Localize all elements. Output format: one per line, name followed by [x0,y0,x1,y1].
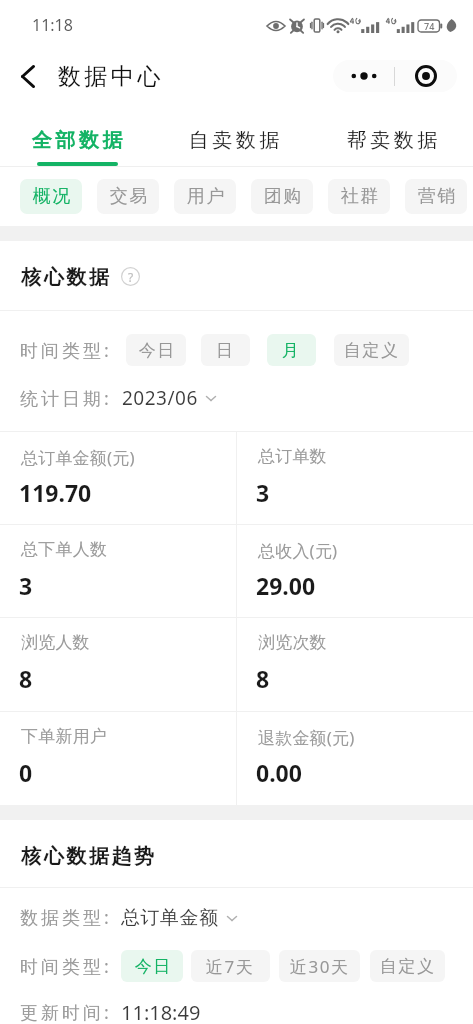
staticText: 退款金额(元) [258,726,355,749]
staticText: 119.70 [19,477,92,508]
staticText: 今日 [138,340,175,361]
button[interactable]: 近30天 [279,950,360,982]
staticText: 月 [282,340,301,361]
staticText: 时间类型: [20,338,112,363]
button[interactable]: 总订单金额 [121,906,238,930]
staticText: 0 [19,757,33,788]
button[interactable]: 团购 [251,179,313,214]
button[interactable]: 社群 [328,179,390,214]
staticText: 总下单人数 [21,539,107,560]
staticText: 11:18:49 [121,999,201,1024]
staticText: 概况 [32,185,71,208]
staticText: 浏览人数 [21,632,90,653]
staticText: 下单新用户 [21,726,107,747]
staticText: 核心数据趋势 [20,844,155,869]
button[interactable]: 月 [267,334,316,366]
staticText: 交易 [109,185,148,208]
staticText: 全部数据 [30,128,124,153]
staticText: 自定义 [380,956,436,977]
button[interactable]: 交易 [97,179,159,214]
button[interactable]: 全部数据 [0,102,157,167]
staticText: 总订单金额(元) [21,446,135,469]
staticText: 74 [424,20,435,32]
staticText: 总订单金额 [121,906,219,930]
staticText: 2023/06 [122,385,198,411]
button[interactable]: 营销 [405,179,467,214]
staticText: 8 [19,663,33,694]
staticText: 更新时间: [20,1000,112,1024]
button[interactable]: 自定义 [334,334,409,366]
button[interactable]: 用户 [174,179,236,214]
staticText: 社群 [340,185,379,208]
staticText: 团购 [263,185,302,208]
staticText: 营销 [417,185,456,208]
staticText: 3 [19,570,33,601]
button[interactable]: Back [8,56,48,96]
staticText: 用户 [186,185,225,208]
staticText: 日 [216,340,235,361]
button[interactable]: 自定义 [370,950,445,982]
button[interactable]: 帮卖数据 [315,102,473,167]
button[interactable]: 今日 [121,950,183,982]
staticText: 数据类型: [20,905,112,930]
staticText: 总订单数 [258,446,327,467]
staticText: 近30天 [290,955,350,978]
staticText: ? [128,269,134,285]
staticText: 统计日期: [20,386,112,411]
staticText: 自卖数据 [187,128,281,153]
staticText: 时间类型: [20,954,112,979]
button[interactable]: 日 [201,334,250,366]
staticText: 数据中心 [56,62,162,91]
staticText: 自定义 [344,340,400,361]
staticText: 29.00 [256,570,316,601]
button[interactable]: 概况 [20,179,82,214]
staticText: 核心数据 [20,265,110,290]
button[interactable]: 近7天 [191,950,270,982]
staticText: 0.00 [256,757,302,788]
button[interactable]: 自卖数据 [157,102,315,167]
button[interactable]: Close [395,60,457,92]
staticText: 3 [256,477,270,508]
staticText: 帮卖数据 [345,128,439,153]
staticText: 今日 [134,956,171,977]
button[interactable]: More options [333,60,394,92]
staticText: 总收入(元) [258,539,338,562]
button[interactable]: Help [121,267,140,286]
button[interactable]: 今日 [126,334,186,366]
staticText: 浏览次数 [258,632,327,653]
staticText: 11:18 [32,14,73,36]
staticText: 8 [256,663,270,694]
button[interactable]: 2023/06 [122,385,217,411]
staticText: 近7天 [206,955,255,978]
